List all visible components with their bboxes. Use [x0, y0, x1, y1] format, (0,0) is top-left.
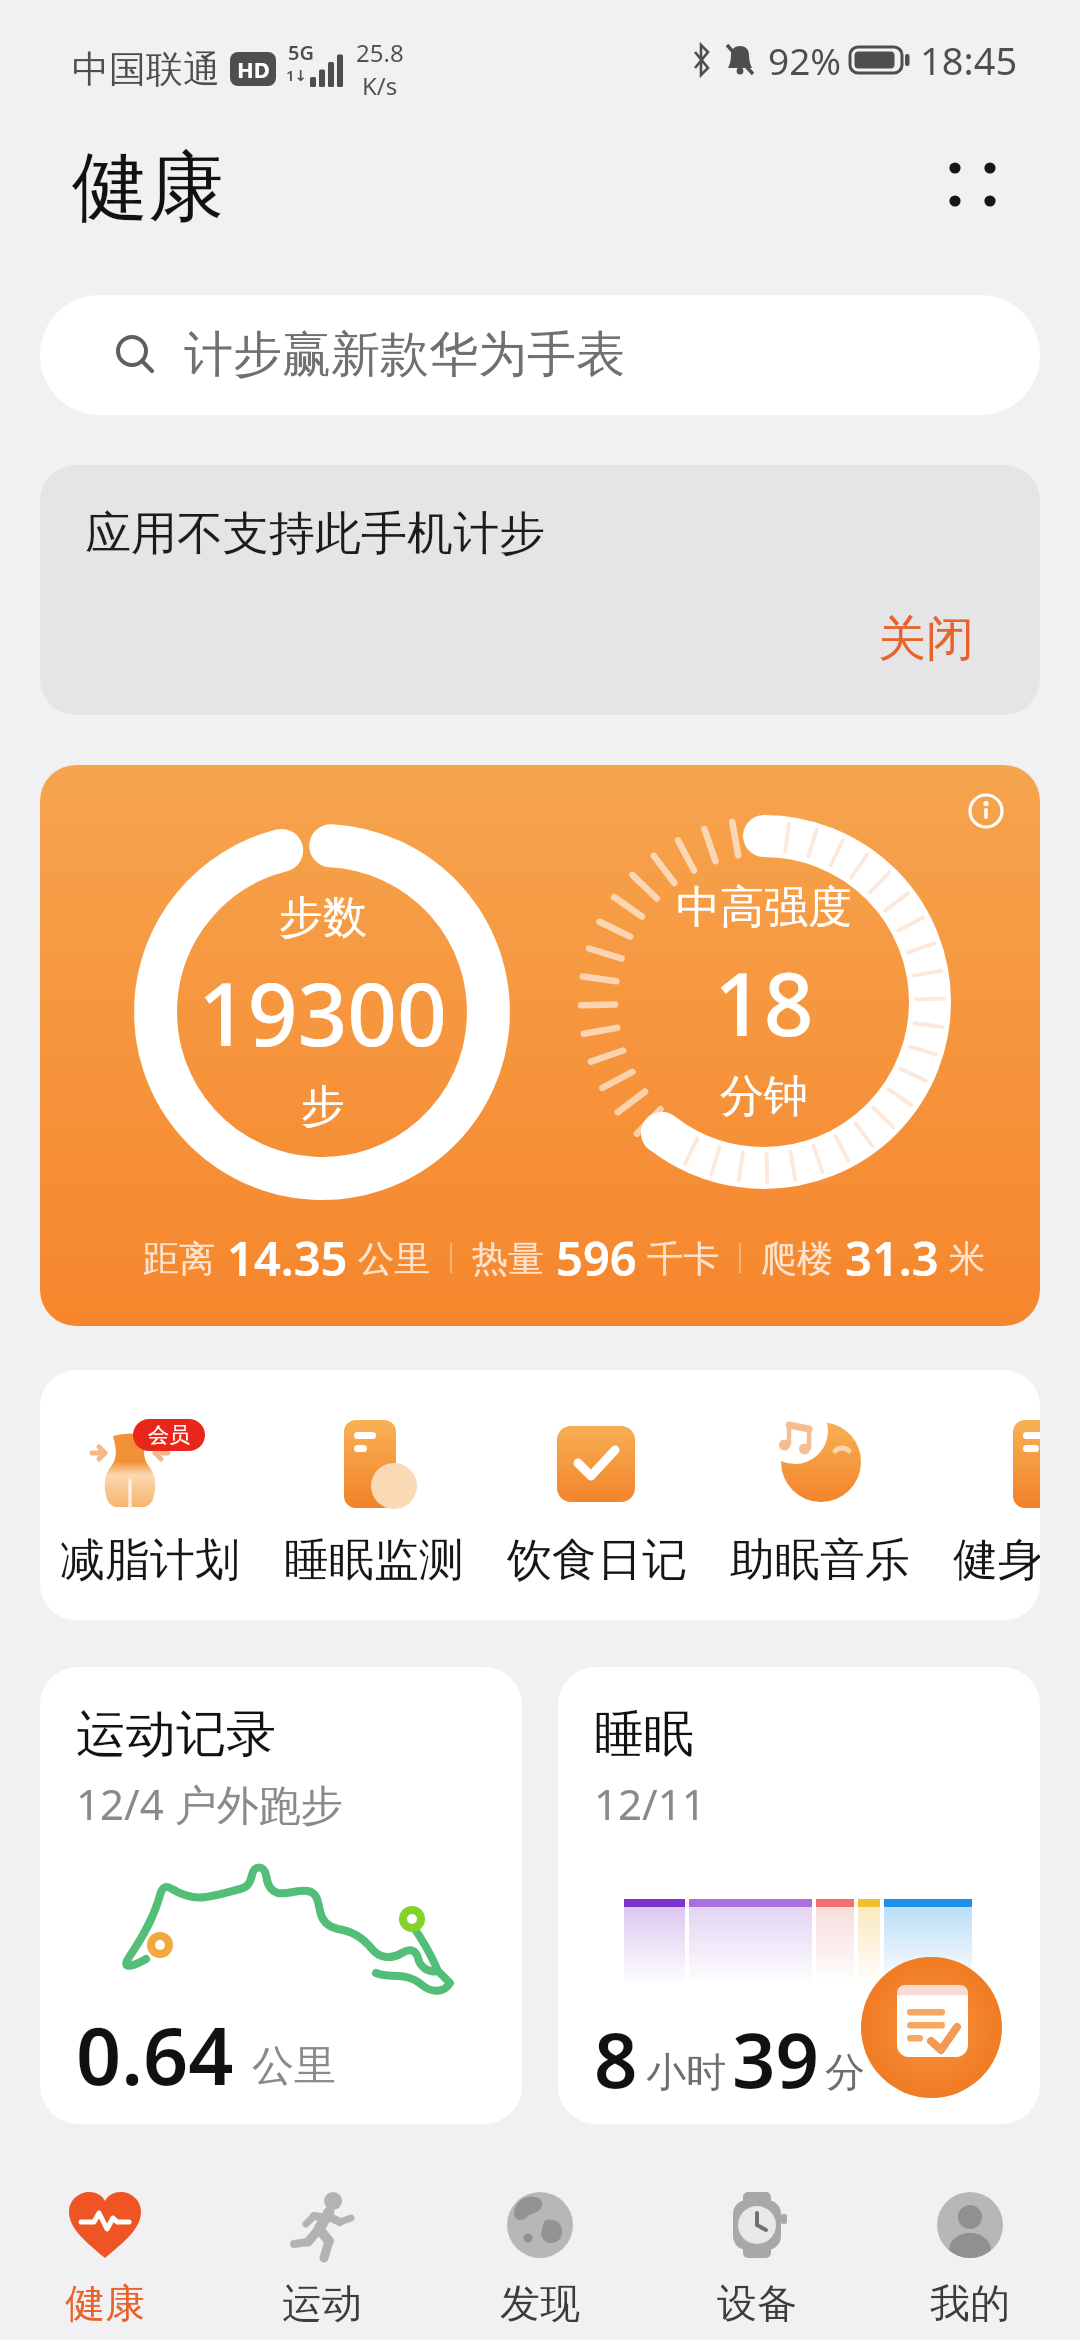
staticText: 12/4 户外跑步 — [76, 1775, 343, 1832]
button[interactable]: 设备 — [662, 2180, 852, 2340]
staticText: HD — [237, 54, 270, 84]
button[interactable]: 关闭 — [878, 609, 974, 669]
button[interactable]: 饮食日记 — [486, 1370, 708, 1620]
button[interactable] — [964, 789, 1012, 837]
button[interactable]: 睡眠监测 — [263, 1370, 485, 1620]
staticText: 关闭 — [878, 609, 974, 669]
button[interactable]: 助眠音乐 — [709, 1370, 931, 1620]
button[interactable]: 运动 — [227, 2180, 417, 2340]
staticText: 健康 — [65, 2278, 145, 2328]
button[interactable]: 健身课程 — [932, 1370, 1040, 1620]
staticText: 18 — [714, 943, 814, 1061]
staticText: 我的 — [930, 2278, 1010, 2328]
staticText: 步数 — [279, 890, 367, 945]
staticText: 14.35 — [227, 1226, 348, 1290]
staticText: 31.3 — [845, 1226, 939, 1290]
staticText: 计步赢新款华为手表 — [184, 324, 625, 386]
staticText: 助眠音乐 — [730, 1532, 910, 1589]
staticText: 步 — [301, 1079, 345, 1134]
staticText: 爬楼 — [761, 1236, 833, 1281]
staticText: 睡眠 — [594, 1703, 694, 1766]
staticText: 发现 — [500, 2278, 580, 2328]
staticText: 18:45 — [920, 34, 1018, 86]
staticText: 米 — [949, 1236, 985, 1281]
staticText: 运动记录 — [76, 1703, 276, 1766]
button[interactable]: 睡眠 — [558, 1667, 1040, 2124]
staticText: 分 — [825, 2047, 865, 2097]
staticText: 减脂计划 — [60, 1532, 240, 1589]
staticText: 会员 — [148, 1422, 190, 1448]
staticText: 8 — [594, 2007, 638, 2111]
staticText: 饮食日记 — [507, 1532, 687, 1589]
staticText: 运动 — [282, 2278, 362, 2328]
staticText: 设备 — [717, 2278, 797, 2328]
button[interactable]: 发现 — [445, 2180, 635, 2340]
staticText: 分钟 — [720, 1069, 808, 1124]
staticText: 健身课程 — [953, 1532, 1040, 1589]
button[interactable]: 我的 — [875, 2180, 1065, 2340]
staticText: 小时 — [646, 2047, 726, 2097]
button[interactable]: 计步赢新款华为手表 — [40, 295, 1040, 415]
staticText: 公里 — [252, 2040, 336, 2093]
staticText: 1↓ — [286, 65, 308, 85]
button[interactable]: 运动记录 — [40, 1667, 522, 2124]
staticText: 12/11 — [594, 1775, 706, 1832]
staticText: 公里 — [358, 1236, 430, 1281]
staticText: 中高强度 — [676, 880, 852, 935]
staticText: 中国联通 — [72, 46, 220, 93]
staticText: 千卡 — [647, 1236, 719, 1281]
staticText: 5G — [288, 39, 314, 66]
button[interactable] — [861, 1957, 1002, 2098]
button[interactable] — [930, 145, 1008, 221]
staticText: 92% — [768, 35, 842, 85]
staticText: K/s — [362, 69, 398, 102]
staticText: 19300 — [198, 953, 447, 1071]
staticText: 0.64 — [76, 2001, 234, 2109]
staticText: 距离 — [143, 1236, 215, 1281]
button[interactable]: 健康 — [10, 2180, 200, 2340]
staticText: 健康 — [72, 140, 224, 236]
staticText: 25.8 — [356, 36, 404, 69]
button[interactable]: 步数 — [40, 765, 1040, 1326]
staticText: 应用不支持此手机计步 — [85, 505, 545, 563]
staticText: 热量 — [472, 1236, 544, 1281]
staticText: 596 — [556, 1226, 637, 1290]
staticText: 睡眠监测 — [284, 1532, 464, 1589]
button[interactable]: 减脂计划 — [40, 1370, 261, 1620]
staticText: 39 — [732, 2007, 819, 2111]
